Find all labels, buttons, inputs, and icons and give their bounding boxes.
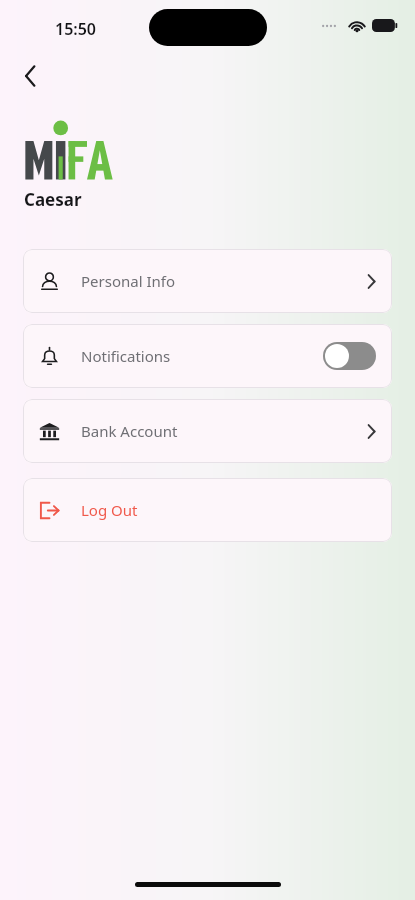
button[interactable]: Toggle notifications bbox=[323, 342, 376, 370]
button[interactable]: Notifications bbox=[23, 324, 392, 388]
staticText: Personal Info bbox=[81, 271, 176, 291]
staticText: Log Out bbox=[81, 500, 138, 520]
button[interactable]: Back bbox=[8, 54, 52, 98]
staticText: Notifications bbox=[81, 346, 171, 366]
button[interactable]: Personal Info bbox=[23, 249, 392, 313]
staticText: Bank Account bbox=[81, 421, 178, 441]
staticText: Caesar bbox=[24, 188, 82, 211]
staticText: 15:50 bbox=[55, 18, 97, 40]
button[interactable]: Log Out bbox=[23, 478, 392, 542]
button[interactable]: Bank Account bbox=[23, 399, 392, 463]
